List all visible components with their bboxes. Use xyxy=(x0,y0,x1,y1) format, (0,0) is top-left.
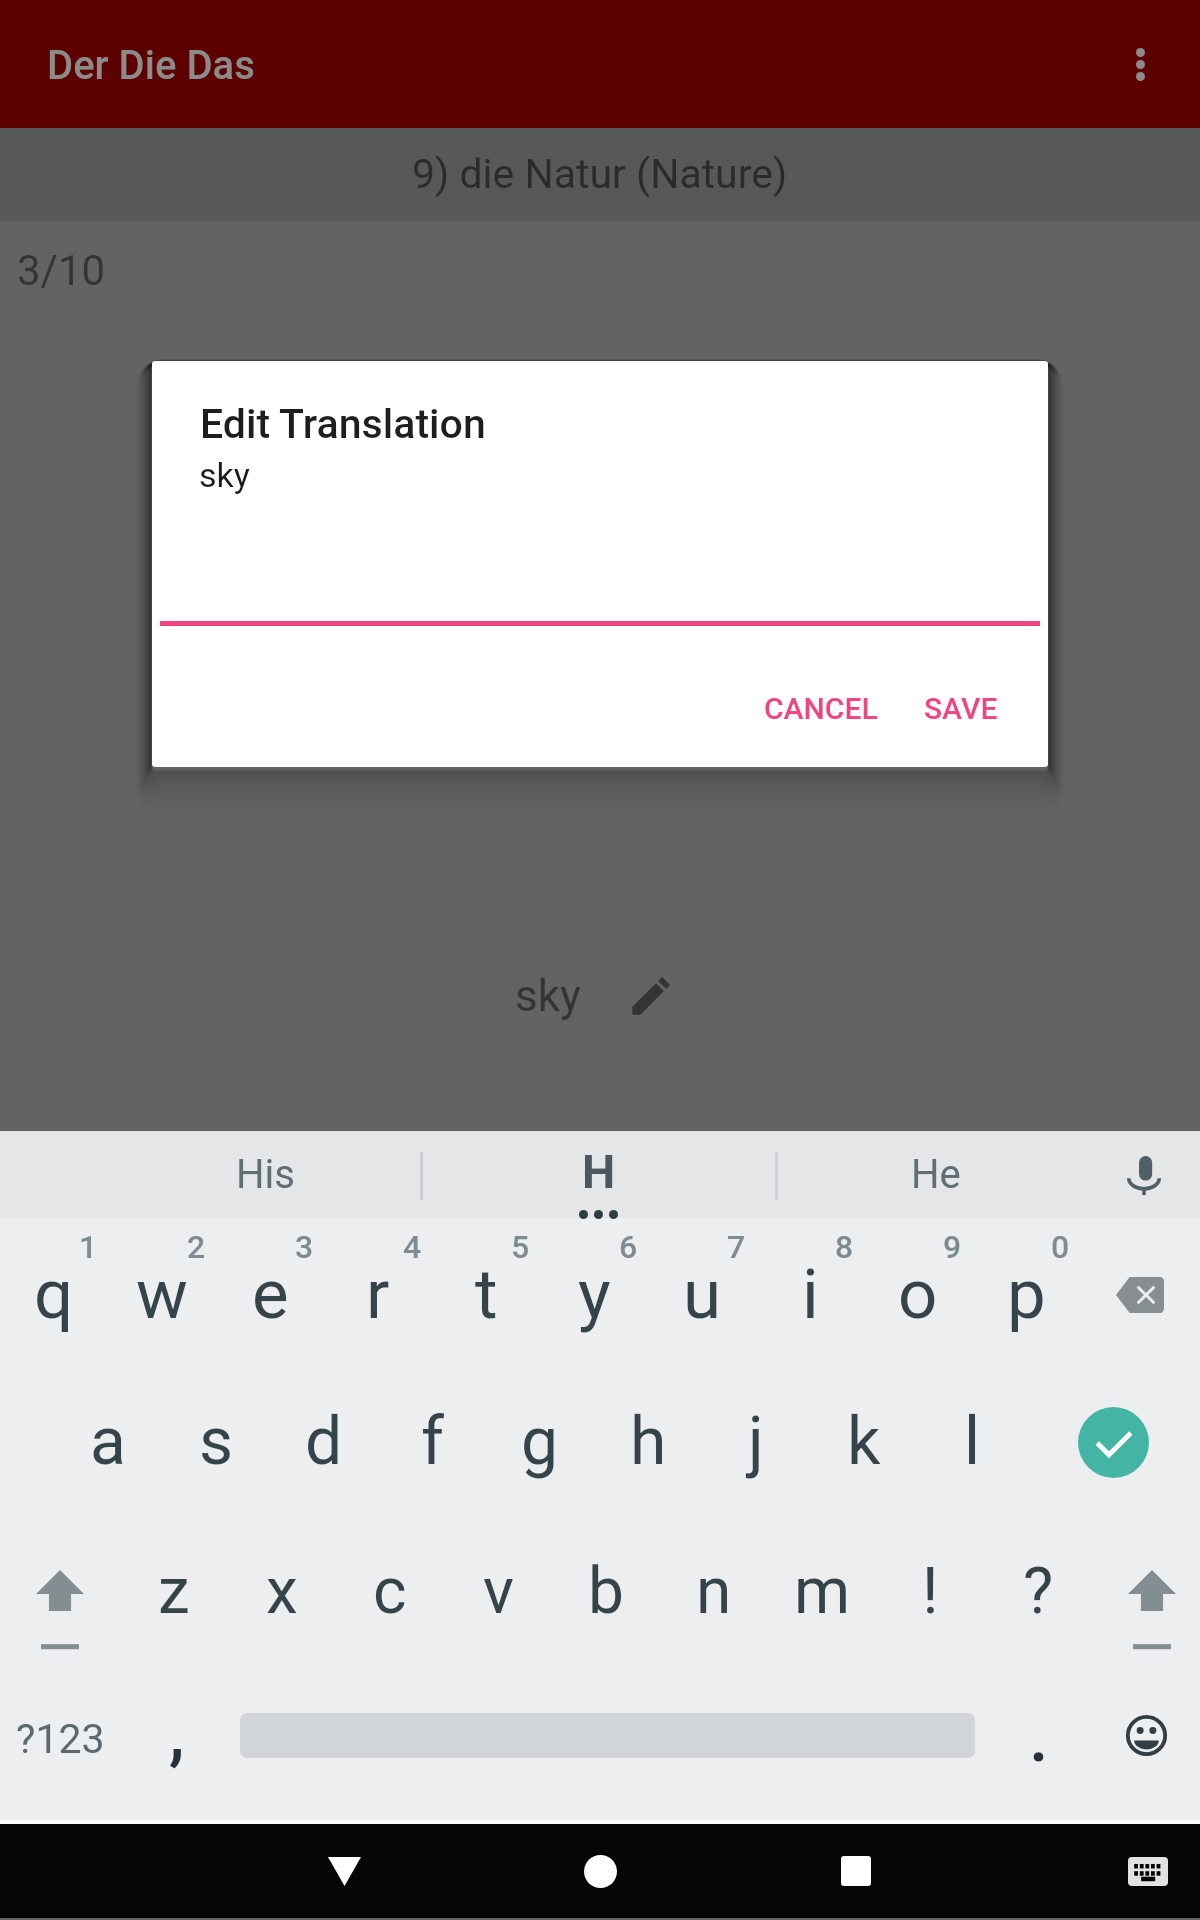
staticText: CANCEL xyxy=(764,691,878,726)
button[interactable]: ? xyxy=(984,1520,1092,1671)
staticText: y xyxy=(578,1254,611,1335)
button[interactable]: ?123 xyxy=(0,1671,120,1820)
button[interactable]: m xyxy=(768,1520,876,1671)
button[interactable]: . xyxy=(975,1671,1075,1820)
staticText: a xyxy=(90,1403,126,1480)
button[interactable]: b xyxy=(552,1520,660,1671)
button[interactable]: j xyxy=(702,1369,810,1520)
button[interactable]: Backspace xyxy=(1080,1218,1200,1369)
button[interactable]: H xyxy=(421,1131,776,1218)
staticText: He xyxy=(911,1151,961,1198)
button[interactable]: c xyxy=(336,1520,444,1671)
staticText: 5 xyxy=(511,1228,530,1266)
staticText: i xyxy=(802,1254,819,1335)
staticText: m xyxy=(794,1554,851,1629)
staticText: Der Die Das xyxy=(47,42,255,89)
staticText: k xyxy=(847,1403,881,1480)
button[interactable]: , xyxy=(120,1671,240,1820)
button[interactable]: z xyxy=(120,1520,228,1671)
button[interactable]: d xyxy=(270,1369,378,1520)
staticText: SAVE xyxy=(924,691,998,726)
staticText: e xyxy=(252,1254,289,1335)
button[interactable]: Voice input xyxy=(1096,1131,1200,1218)
staticText: ?123 xyxy=(16,1715,105,1763)
button[interactable]: ! xyxy=(876,1520,984,1671)
button[interactable]: Back xyxy=(254,1824,434,1918)
staticText: sky xyxy=(515,970,581,1022)
staticText: t xyxy=(475,1254,498,1335)
staticText: r xyxy=(366,1254,390,1335)
staticText: ! xyxy=(922,1554,939,1629)
button[interactable]: l xyxy=(918,1369,1026,1520)
staticText: 1 xyxy=(79,1228,98,1266)
button[interactable]: CANCEL xyxy=(748,677,894,740)
staticText: x xyxy=(266,1554,298,1629)
button[interactable]: 9 xyxy=(864,1218,972,1369)
button[interactable]: 6 xyxy=(540,1218,648,1369)
button[interactable]: More options xyxy=(1080,0,1200,128)
button[interactable]: f xyxy=(378,1369,486,1520)
button[interactable]: 7 xyxy=(648,1218,756,1369)
staticText: His xyxy=(236,1151,295,1198)
button[interactable]: v xyxy=(444,1520,552,1671)
button[interactable]: k xyxy=(810,1369,918,1520)
staticText: d xyxy=(305,1403,343,1480)
staticText: c xyxy=(373,1554,407,1629)
staticText: 2 xyxy=(187,1228,206,1266)
staticText: 9 xyxy=(943,1228,962,1266)
staticText: 7 xyxy=(727,1228,746,1266)
button[interactable]: Recent apps xyxy=(766,1824,946,1918)
staticText: 3 xyxy=(295,1228,314,1266)
staticText: f xyxy=(421,1403,444,1480)
staticText: l xyxy=(964,1403,981,1480)
staticText: 4 xyxy=(403,1228,422,1266)
button[interactable]: x xyxy=(228,1520,336,1671)
staticText: u xyxy=(683,1254,722,1335)
button[interactable]: 8 xyxy=(756,1218,864,1369)
button[interactable]: Home xyxy=(510,1824,690,1918)
button[interactable]: 5 xyxy=(432,1218,540,1369)
staticText: b xyxy=(588,1554,624,1629)
button[interactable]: Switch keyboard xyxy=(1092,1824,1200,1918)
staticText: 0 xyxy=(1051,1228,1070,1266)
button[interactable]: Enter xyxy=(1026,1369,1200,1520)
button[interactable]: 2 xyxy=(108,1218,216,1369)
button[interactable]: 3 xyxy=(216,1218,324,1369)
staticText: n xyxy=(696,1554,732,1629)
staticText: . xyxy=(1029,1696,1049,1778)
button[interactable]: g xyxy=(486,1369,594,1520)
button[interactable]: s xyxy=(162,1369,270,1520)
button[interactable]: 4 xyxy=(324,1218,432,1369)
staticText: 8 xyxy=(835,1228,854,1266)
staticText: s xyxy=(199,1403,234,1480)
staticText: ? xyxy=(1023,1554,1054,1629)
button[interactable]: SAVE xyxy=(908,677,1014,740)
staticText: o xyxy=(898,1254,938,1335)
button[interactable]: 0 xyxy=(972,1218,1080,1369)
staticText: H xyxy=(582,1144,616,1199)
staticText: 6 xyxy=(619,1228,638,1266)
staticText: p xyxy=(1007,1254,1046,1335)
staticText: j xyxy=(748,1403,764,1480)
button[interactable]: h xyxy=(594,1369,702,1520)
button[interactable]: a xyxy=(54,1369,162,1520)
button[interactable]: n xyxy=(660,1520,768,1671)
button[interactable]: Shift xyxy=(0,1520,120,1671)
staticText: v xyxy=(483,1554,514,1629)
button[interactable]: Space xyxy=(240,1671,975,1820)
staticText: 9) die Natur (Nature) xyxy=(412,150,788,198)
button[interactable]: 1 xyxy=(0,1218,108,1369)
staticText: q xyxy=(34,1254,74,1335)
staticText: g xyxy=(521,1403,559,1480)
button[interactable]: He xyxy=(776,1131,1096,1218)
staticText: 3/10 xyxy=(17,246,106,295)
button[interactable]: sky xyxy=(515,970,677,1022)
staticText: h xyxy=(630,1403,667,1480)
other: Edit translation xyxy=(626,970,677,1021)
button[interactable]: Emoji xyxy=(1075,1671,1200,1820)
button[interactable]: Shift xyxy=(1092,1520,1200,1671)
staticText: z xyxy=(158,1554,190,1629)
staticText: sky xyxy=(199,455,250,495)
staticText: w xyxy=(136,1254,188,1335)
button[interactable]: His xyxy=(110,1131,421,1218)
